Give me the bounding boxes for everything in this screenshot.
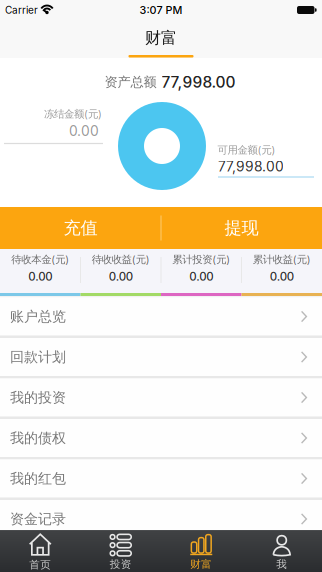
staticText: 充值 (63, 217, 97, 239)
staticText: 我的投资 (10, 389, 66, 406)
button[interactable]: 财富 (161, 530, 241, 572)
staticText: 首页 (29, 558, 51, 571)
staticText: 我的红包 (10, 470, 66, 487)
button[interactable]: 我的债权 (0, 419, 322, 457)
staticText: 3:07 PM (139, 3, 182, 17)
staticText: 待收本金(元) (11, 253, 69, 266)
button[interactable]: 回款计划 (0, 338, 322, 376)
button[interactable]: 提现 (161, 207, 322, 249)
button[interactable]: 我 (241, 530, 322, 572)
staticText: 账户总览 (10, 308, 66, 325)
button[interactable]: 资金记录 (0, 500, 322, 538)
staticText: 财富 (190, 558, 212, 571)
staticText: 累计投资(元) (172, 253, 230, 266)
staticText: 0.00 (28, 269, 52, 283)
staticText: Carrier (5, 4, 38, 16)
staticText: 0.00 (189, 269, 213, 283)
staticText: 回款计划 (10, 348, 66, 366)
button[interactable]: 我的投资 (0, 378, 322, 416)
button[interactable]: 充值 (0, 207, 161, 249)
button[interactable]: 投资 (80, 530, 161, 572)
staticText: 冻结金额(元) (44, 107, 102, 120)
staticText: 77,998.00 (218, 158, 284, 175)
staticText: 待收收益(元) (92, 253, 150, 266)
button[interactable]: 账户总览 (0, 297, 322, 335)
staticText: 提现 (224, 217, 258, 239)
staticText: 我 (276, 558, 287, 571)
staticText: 我的债权 (10, 429, 66, 447)
staticText: 0.00 (109, 269, 133, 283)
staticText: 77,998.00 (161, 73, 235, 91)
staticText: 0.00 (270, 269, 294, 283)
staticText: 0.00 (69, 123, 99, 139)
button[interactable]: 首页 (0, 530, 80, 572)
staticText: 累计收益(元) (253, 253, 311, 266)
staticText: 投资 (110, 558, 132, 571)
staticText: 财富 (145, 28, 177, 48)
staticText: 资金记录 (10, 510, 66, 528)
staticText: 资产总额 (104, 74, 156, 90)
button[interactable]: 我的红包 (0, 459, 322, 497)
staticText: 可用金额(元) (217, 143, 275, 156)
